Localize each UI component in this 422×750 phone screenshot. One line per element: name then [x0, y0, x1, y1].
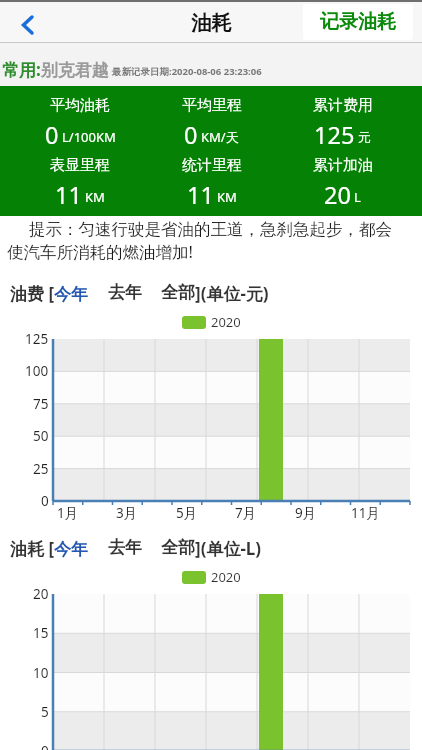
staticText: 油耗	[191, 10, 232, 36]
button[interactable]: 统计里程	[146, 151, 277, 216]
staticText: ](单位-元)	[195, 282, 269, 305]
button[interactable]: 全部	[142, 537, 195, 558]
button[interactable]: 平均油耗	[14, 91, 146, 156]
staticText: 11月	[351, 504, 380, 522]
staticText: 25	[33, 460, 49, 478]
button[interactable]: 去年	[89, 537, 142, 558]
staticText: ](单位-L)	[195, 537, 262, 560]
staticText: 常用:别克君越	[2, 58, 109, 81]
staticText: 20	[33, 585, 49, 603]
staticText: 油耗 [今年	[10, 537, 89, 560]
staticText: 平均油耗	[50, 96, 110, 115]
staticText: 记录油耗	[320, 10, 396, 34]
staticText: 0	[45, 119, 59, 151]
staticText: KM	[85, 188, 105, 206]
staticText: 累计费用	[313, 96, 373, 115]
staticText: 5月	[176, 504, 198, 522]
staticText: 125	[314, 119, 355, 151]
staticText: 提示：匀速行驶是省油的王道，急刹急起步，都会	[29, 219, 392, 240]
button[interactable]: 累计加油	[277, 151, 408, 216]
staticText: 75	[33, 395, 49, 413]
button[interactable]: 累计费用	[277, 91, 408, 156]
staticText: KM	[217, 188, 237, 206]
staticText: 使汽车所消耗的燃油增加!	[7, 240, 193, 263]
staticText: 去年	[108, 537, 142, 558]
staticText: 9月	[295, 504, 317, 522]
staticText: 最新记录日期:2020-08-06 23:23:06	[112, 65, 262, 78]
staticText: 全部	[161, 282, 195, 303]
button[interactable]: 记录油耗	[303, 4, 413, 40]
staticText: 2020	[211, 568, 241, 586]
staticText: L	[354, 188, 361, 206]
button[interactable]	[11, 11, 43, 39]
staticText: 125	[25, 330, 49, 348]
staticText: 0	[41, 742, 49, 750]
staticText: 3月	[116, 504, 138, 522]
staticText: 统计里程	[182, 156, 242, 175]
staticText: L/100KM	[62, 128, 116, 146]
button[interactable]: 平均里程	[146, 91, 277, 156]
staticText: 去年	[108, 282, 142, 303]
button[interactable]: 常用:别克君越	[0, 43, 422, 86]
staticText: 10	[33, 664, 49, 682]
button[interactable]: 去年	[89, 282, 142, 303]
staticText: 0	[41, 492, 49, 510]
staticText: 15	[33, 624, 49, 642]
staticText: 平均里程	[182, 96, 242, 115]
staticText: 累计加油	[313, 156, 373, 175]
staticText: 2020	[211, 313, 241, 331]
staticText: 11	[187, 179, 214, 211]
staticText: 11	[55, 179, 82, 211]
staticText: 油费 [今年	[10, 282, 89, 305]
staticText: 100	[25, 362, 49, 380]
staticText: 0	[184, 119, 198, 151]
button[interactable]: 全部	[142, 282, 195, 303]
staticText: KM/天	[201, 128, 239, 146]
staticText: 20	[324, 179, 351, 211]
staticText: 表显里程	[50, 156, 110, 175]
staticText: 全部	[161, 537, 195, 558]
staticText: 7月	[235, 504, 257, 522]
staticText: 1月	[57, 504, 79, 522]
button[interactable]: 表显里程	[14, 151, 146, 216]
staticText: 50	[33, 427, 49, 445]
staticText: 5	[41, 703, 49, 721]
staticText: 元	[358, 129, 371, 145]
